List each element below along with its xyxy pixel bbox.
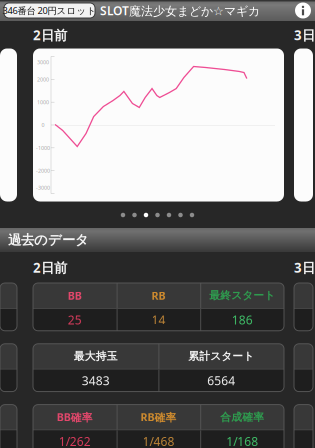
staticText: 3483 bbox=[82, 373, 110, 388]
staticText: BB確率 bbox=[57, 410, 93, 424]
staticText: 累計スタート bbox=[188, 350, 254, 363]
staticText: 3日 bbox=[294, 259, 315, 276]
staticText: 3日 bbox=[294, 26, 315, 44]
staticText: 2日前 bbox=[33, 26, 67, 44]
button[interactable]: 346番台 20円スロット bbox=[4, 3, 95, 18]
staticText: 346番台 20円スロット bbox=[2, 4, 96, 17]
button[interactable]: Info bbox=[294, 1, 312, 19]
staticText: 186 bbox=[232, 312, 253, 328]
staticText: -3000 bbox=[36, 184, 50, 191]
staticText: BB bbox=[68, 288, 82, 303]
staticText: -1000 bbox=[36, 144, 50, 151]
staticText: 1/468 bbox=[142, 433, 174, 448]
staticText: 合成確率 bbox=[220, 410, 264, 424]
staticText: 14 bbox=[151, 312, 165, 328]
staticText: 2日前 bbox=[33, 259, 67, 276]
staticText: 0 bbox=[41, 121, 44, 129]
staticText: RB bbox=[151, 288, 165, 303]
staticText: 1/262 bbox=[59, 433, 91, 448]
staticText: 25 bbox=[68, 312, 82, 328]
staticText: 2000 bbox=[37, 76, 49, 83]
staticText: 3000 bbox=[37, 59, 49, 66]
staticText: 最終スタート bbox=[209, 289, 275, 302]
staticText: 6564 bbox=[207, 373, 235, 388]
staticText: SLOT魔法少女まどか☆マギカ bbox=[100, 2, 260, 18]
staticText: 最大持玉 bbox=[74, 350, 118, 363]
staticText: -2000 bbox=[36, 167, 50, 174]
staticText: 過去のデータ bbox=[8, 232, 89, 248]
staticText: 1/168 bbox=[226, 433, 258, 448]
staticText: 1000 bbox=[37, 99, 49, 106]
staticText: RB確率 bbox=[140, 410, 176, 424]
